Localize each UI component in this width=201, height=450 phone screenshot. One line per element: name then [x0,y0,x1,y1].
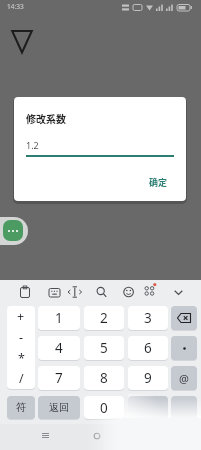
staticText: - [19,329,24,346]
button[interactable]: 0 [84,396,124,419]
staticText: 3 [144,309,152,327]
staticText: 0 [100,399,108,417]
staticText: 1.2 [26,139,39,151]
button[interactable] [171,396,197,419]
staticText: @ [179,371,189,386]
button[interactable] [3,220,23,241]
staticText: 确定 [149,176,168,189]
staticText: * [18,350,25,367]
staticText: 8 [100,369,108,387]
button[interactable]: @ [171,366,197,390]
staticText: 5 [100,339,108,357]
staticText: / [19,370,24,387]
staticText: 7 [55,369,63,387]
staticText: 2 [100,309,108,327]
button[interactable]: 6 [128,336,168,360]
button[interactable] [7,306,35,389]
button[interactable]: 返回 [38,396,80,419]
button[interactable] [171,306,197,330]
staticText: + [17,308,25,325]
staticText: 14:33 [7,2,24,11]
button[interactable]: 确定 [142,173,174,191]
staticText: 4 [55,339,63,357]
button[interactable]: 5 [84,336,124,360]
button[interactable]: 3 [128,306,168,330]
button[interactable] [128,396,168,419]
button[interactable]: 符 [7,396,35,419]
staticText: 修改系数 [26,111,66,125]
button[interactable]: 9 [128,366,168,390]
button[interactable]: 1 [38,306,80,330]
staticText: 符 [16,401,27,414]
staticText: 9 [144,369,152,387]
staticText: 6 [144,339,152,357]
button[interactable]: 2 [84,306,124,330]
staticText: 返回 [49,401,69,414]
button[interactable]: 8 [84,366,124,390]
button[interactable]: 7 [38,366,80,390]
button[interactable] [171,336,197,360]
staticText: 1 [55,309,63,327]
button[interactable]: 4 [38,336,80,360]
